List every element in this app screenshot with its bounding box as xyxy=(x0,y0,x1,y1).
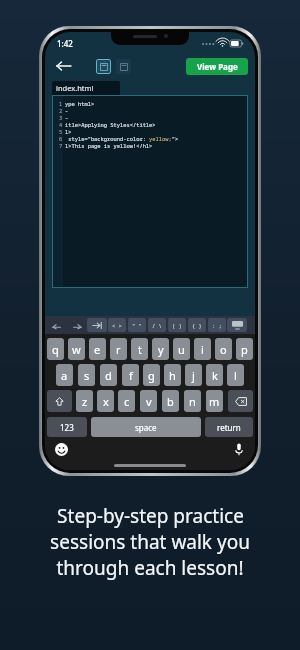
staticText: a xyxy=(61,368,68,383)
button[interactable]: Undo xyxy=(47,318,67,332)
button[interactable]: Tab xyxy=(87,318,107,332)
staticText: - xyxy=(65,107,69,114)
button[interactable]: Shift xyxy=(47,390,72,412)
button[interactable]: return xyxy=(205,417,253,437)
button[interactable]: w xyxy=(68,338,85,360)
staticText: q xyxy=(52,342,59,357)
button[interactable]: 123 xyxy=(47,417,87,437)
button[interactable]: View Page xyxy=(186,58,248,75)
staticText: f xyxy=(129,368,133,383)
staticText: 2 xyxy=(59,107,63,114)
button[interactable]: d xyxy=(100,364,117,386)
staticText: m xyxy=(209,394,220,409)
staticText: c xyxy=(124,394,130,409)
staticText: i xyxy=(201,342,204,357)
button[interactable]: Hide keyboard xyxy=(227,318,247,332)
button[interactable]: r xyxy=(110,338,127,360)
staticText: Step-by-step practice xyxy=(57,503,244,529)
button[interactable]: : ; xyxy=(208,318,226,332)
button[interactable]: e xyxy=(89,338,106,360)
button[interactable]: l xyxy=(227,364,244,386)
button[interactable]: space xyxy=(91,417,201,437)
staticText: itle>Applying Styles</title> xyxy=(65,121,156,128)
staticText: l> xyxy=(65,128,72,135)
button[interactable]: y xyxy=(152,338,169,360)
staticText: through each lesson! xyxy=(56,555,244,581)
staticText: e xyxy=(94,342,101,357)
button[interactable]: z xyxy=(76,390,93,412)
staticText: j xyxy=(192,368,195,383)
button[interactable]: h xyxy=(164,364,181,386)
staticText: n xyxy=(189,394,196,409)
button[interactable]: k xyxy=(206,364,223,386)
button[interactable]: < > xyxy=(108,318,126,332)
staticText: x xyxy=(103,394,109,409)
button[interactable]: Dictation xyxy=(231,441,247,457)
staticText: 4 xyxy=(59,121,63,128)
button[interactable]: x xyxy=(97,390,114,412)
staticText: space xyxy=(135,422,157,433)
staticText: b xyxy=(167,394,174,409)
staticText: ( ) xyxy=(172,322,182,329)
staticText: h xyxy=(169,368,176,383)
staticText: r xyxy=(116,342,121,357)
staticText: sessions that walk you xyxy=(50,529,250,555)
staticText: 1>This page is yellow!</h1> xyxy=(65,142,153,149)
button[interactable]: / \ xyxy=(148,318,166,332)
staticText: v xyxy=(146,394,152,409)
staticText: g xyxy=(148,368,155,383)
button[interactable]: a xyxy=(56,364,73,386)
button[interactable]: u xyxy=(173,338,190,360)
button[interactable]: Delete xyxy=(228,390,253,412)
staticText: t xyxy=(138,342,142,357)
staticText: style="background-color: yellow;"> xyxy=(65,135,179,142)
staticText: return xyxy=(217,422,241,433)
staticText: l xyxy=(234,368,237,383)
staticText: 3 xyxy=(59,114,63,121)
staticText: 1:42 xyxy=(57,38,73,49)
staticText: { } xyxy=(192,322,202,329)
button[interactable]: { } xyxy=(188,318,206,332)
staticText: 123 xyxy=(60,422,74,433)
staticText: 1 xyxy=(59,100,63,107)
staticText: k xyxy=(212,368,218,383)
button[interactable]: t xyxy=(131,338,148,360)
button[interactable]: i xyxy=(194,338,211,360)
button[interactable]: m xyxy=(206,390,223,412)
button[interactable]: Back xyxy=(52,55,74,77)
staticText: u xyxy=(178,342,185,357)
staticText: " " xyxy=(132,322,142,329)
button[interactable]: b xyxy=(162,390,179,412)
button[interactable]: j xyxy=(185,364,202,386)
button[interactable]: o xyxy=(215,338,232,360)
button[interactable]: v xyxy=(140,390,157,412)
staticText: View Page xyxy=(197,61,238,72)
staticText: p xyxy=(241,342,248,357)
staticText: - xyxy=(65,114,69,121)
staticText: w xyxy=(72,342,81,357)
button[interactable]: index.html xyxy=(52,81,120,95)
button[interactable]: f xyxy=(122,364,139,386)
staticText: d xyxy=(105,368,112,383)
button[interactable]: ( ) xyxy=(168,318,186,332)
button[interactable]: Emoji xyxy=(53,441,69,457)
staticText: o xyxy=(220,342,227,357)
staticText: ype html> xyxy=(65,100,95,107)
button[interactable]: CSS file tab xyxy=(116,59,131,74)
button[interactable]: g xyxy=(143,364,160,386)
button[interactable]: " " xyxy=(128,318,146,332)
button[interactable]: Redo xyxy=(67,318,87,332)
staticText: s xyxy=(84,368,90,383)
button[interactable]: s xyxy=(78,364,95,386)
staticText: < > xyxy=(112,322,122,329)
staticText: 5 xyxy=(59,128,63,135)
button[interactable]: q xyxy=(47,338,64,360)
button[interactable]: c xyxy=(118,390,135,412)
button[interactable]: n xyxy=(184,390,201,412)
staticText: index.html xyxy=(56,83,94,93)
staticText: : ; xyxy=(212,322,222,329)
button[interactable]: HTML file tab xyxy=(96,59,111,74)
staticText: y xyxy=(158,342,164,357)
staticText: 6 xyxy=(59,135,63,142)
button[interactable]: p xyxy=(236,338,253,360)
